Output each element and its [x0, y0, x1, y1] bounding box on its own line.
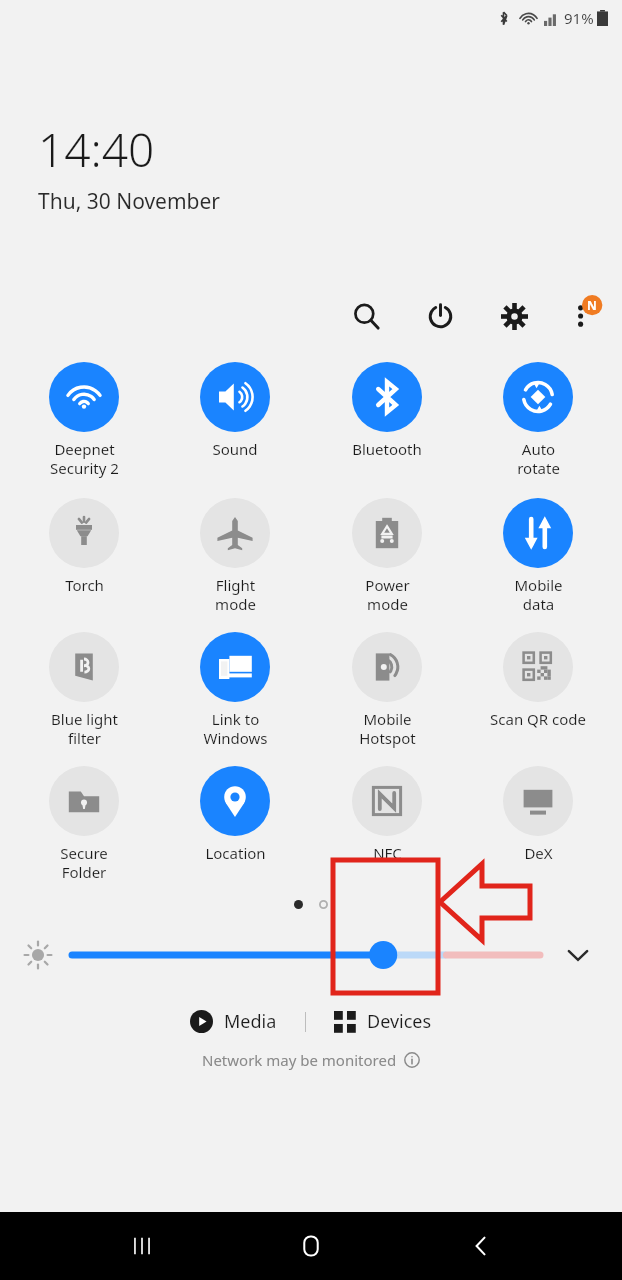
- button[interactable]: Devices: [324, 1003, 442, 1040]
- staticText: Devices: [367, 1009, 432, 1034]
- staticText: Scan QR code: [490, 709, 586, 729]
- button[interactable]: Flight mode: [168, 496, 302, 616]
- button[interactable]: More options: [562, 294, 606, 338]
- button[interactable]: Home: [283, 1218, 339, 1274]
- staticText: Bluetooth: [352, 439, 422, 459]
- button[interactable]: Deepnet Security 2: [17, 360, 151, 480]
- button[interactable]: NFC: [320, 764, 454, 865]
- button[interactable]: Auto rotate: [471, 360, 605, 480]
- staticText: Power mode: [365, 575, 410, 614]
- staticText: Secure Folder: [60, 843, 108, 882]
- staticText: N: [587, 297, 597, 313]
- staticText: Flight mode: [215, 575, 256, 614]
- staticText: Deepnet Security 2: [50, 439, 119, 478]
- staticText: Network may be monitored: [202, 1050, 397, 1070]
- button[interactable]: DeX: [471, 764, 605, 865]
- staticText: Mobile Hotspot: [359, 709, 416, 748]
- button[interactable]: Recents: [114, 1218, 170, 1274]
- button[interactable]: Power: [418, 294, 462, 338]
- staticText: Link to Windows: [203, 709, 268, 748]
- staticText: Sound: [212, 439, 258, 459]
- staticText: Media: [224, 1009, 277, 1034]
- button[interactable]: Back: [453, 1218, 509, 1274]
- staticText: Thu, 30 November: [38, 187, 221, 216]
- staticText: DeX: [524, 843, 553, 863]
- button[interactable]: Secure Folder: [17, 764, 151, 884]
- button[interactable]: Mobile Hotspot: [320, 630, 454, 750]
- button[interactable]: Brightness: [72, 937, 540, 973]
- button[interactable]: Scan QR code: [471, 630, 605, 731]
- button[interactable]: Bluetooth: [320, 360, 454, 461]
- button[interactable]: Location: [168, 764, 302, 865]
- button[interactable]: Mobile data: [471, 496, 605, 616]
- staticText: Auto rotate: [517, 439, 560, 478]
- staticText: 91%: [564, 8, 594, 28]
- staticText: NFC: [373, 843, 402, 863]
- button[interactable]: Power mode: [320, 496, 454, 616]
- staticText: Blue light filter: [51, 709, 118, 748]
- button[interactable]: Torch: [17, 496, 151, 597]
- staticText: Location: [205, 843, 266, 863]
- button[interactable]: Settings: [492, 294, 536, 338]
- button[interactable]: Search: [344, 294, 388, 338]
- staticText: Mobile data: [514, 575, 563, 614]
- staticText: 14:40: [38, 118, 155, 181]
- button[interactable]: Blue light filter: [17, 630, 151, 750]
- staticText: Torch: [65, 575, 104, 595]
- button[interactable]: Link to Windows: [168, 630, 302, 750]
- button[interactable]: Expand: [556, 933, 600, 977]
- button[interactable]: Sound: [168, 360, 302, 461]
- button[interactable]: Media: [180, 1003, 287, 1040]
